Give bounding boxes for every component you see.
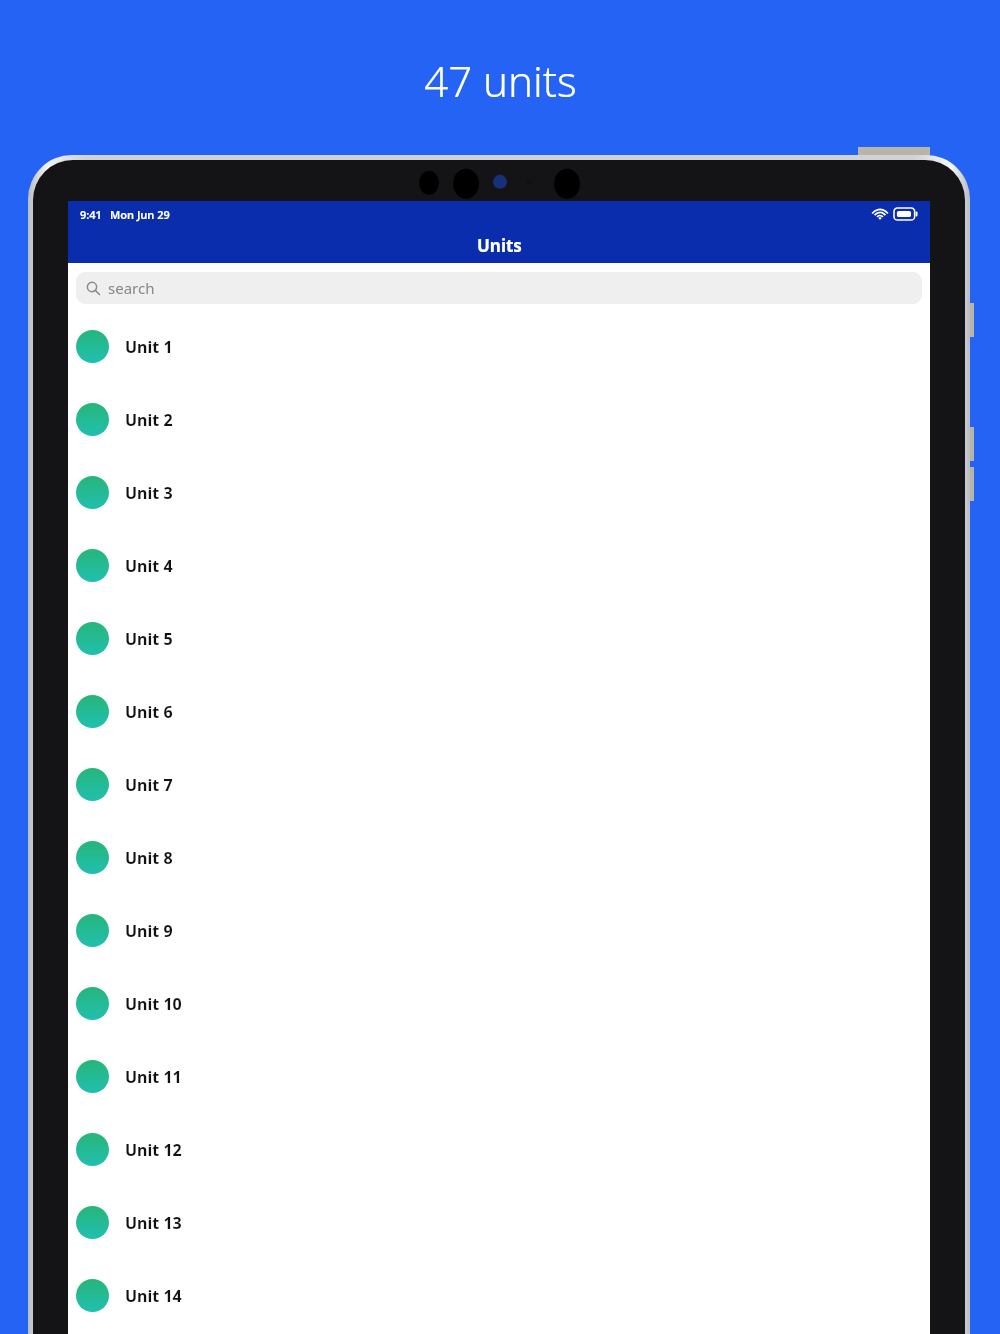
button[interactable]: Unit 11: [68, 1040, 930, 1113]
button[interactable]: Unit 9: [68, 894, 930, 967]
staticText: Unit 7: [125, 774, 173, 796]
staticText: Unit 14: [125, 1285, 182, 1307]
staticText: Units: [477, 234, 522, 257]
button[interactable]: Unit 13: [68, 1186, 930, 1259]
button[interactable]: Unit 4: [68, 529, 930, 602]
staticText: Unit 4: [125, 555, 173, 577]
staticText: Unit 13: [125, 1212, 182, 1234]
button[interactable]: Unit 14: [68, 1259, 930, 1332]
staticText: Unit 2: [125, 409, 173, 431]
button[interactable]: Unit 8: [68, 821, 930, 894]
button[interactable]: Unit 2: [68, 383, 930, 456]
staticText: Unit 1: [125, 336, 173, 358]
button[interactable]: Unit 1: [68, 310, 930, 383]
staticText: Mon Jun 29: [110, 207, 170, 222]
staticText: 9:41: [80, 207, 102, 222]
button[interactable]: Unit 12: [68, 1113, 930, 1186]
staticText: Unit 5: [125, 628, 173, 650]
button[interactable]: Unit 3: [68, 456, 930, 529]
staticText: Unit 8: [125, 847, 173, 869]
staticText: Unit 11: [125, 1066, 182, 1088]
button[interactable]: Unit 7: [68, 748, 930, 821]
button[interactable]: search: [76, 272, 922, 304]
button[interactable]: Unit 6: [68, 675, 930, 748]
staticText: Unit 10: [125, 993, 182, 1015]
staticText: Unit 3: [125, 482, 173, 504]
button[interactable]: Unit 5: [68, 602, 930, 675]
staticText: search: [108, 278, 155, 298]
staticText: 47 units: [424, 52, 577, 109]
button[interactable]: Unit 10: [68, 967, 930, 1040]
staticText: Unit 9: [125, 920, 173, 942]
staticText: Unit 6: [125, 701, 173, 723]
staticText: Unit 12: [125, 1139, 182, 1161]
